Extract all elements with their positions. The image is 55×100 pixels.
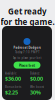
staticText: Win boost <box>30 85 44 89</box>
button[interactable]: Place bet <box>13 62 40 69</box>
staticText: Bonus bets <box>5 85 21 89</box>
staticText: Get ready <box>8 6 47 17</box>
staticText: Available <box>5 72 17 75</box>
staticText: $36.00 <box>5 75 21 82</box>
staticText: Today 7:10 PM PT <box>15 50 39 54</box>
staticText: $2.25 <box>5 89 18 96</box>
staticText: Padres at Dodgers <box>13 46 40 49</box>
staticText: Place bet <box>18 62 35 68</box>
staticText: 30% <box>30 89 41 96</box>
staticText: Tap to place your bet <box>12 56 41 60</box>
staticText: for the game. <box>0 17 54 27</box>
staticText: Balance <box>30 72 40 75</box>
staticText: $0.00 <box>30 75 43 82</box>
